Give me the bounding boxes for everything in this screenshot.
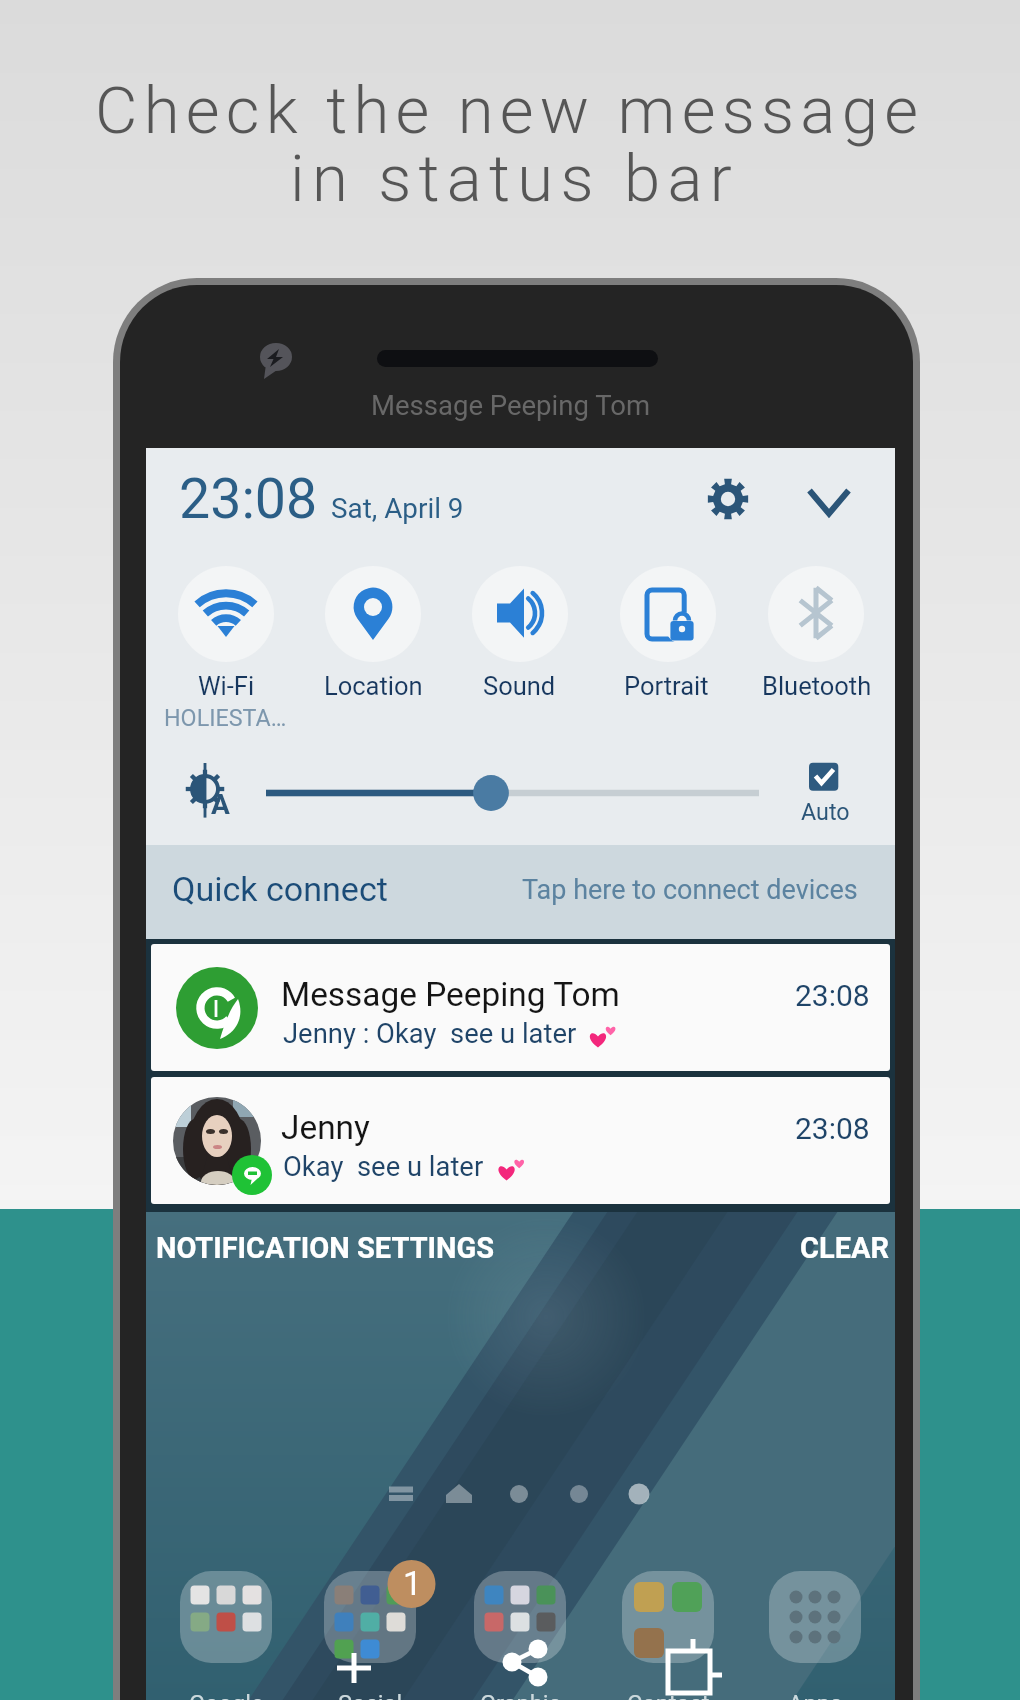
staticText: Apps: [788, 1690, 843, 1700]
staticText: Quick connect: [172, 869, 388, 909]
staticText: Graphic: [480, 1690, 561, 1700]
staticText: 1: [403, 1564, 422, 1603]
staticText: Location: [324, 671, 423, 701]
staticText: Message Peeping Tom: [371, 389, 651, 421]
staticText: Contact: [627, 1690, 710, 1700]
button[interactable]: Jenny: [151, 1077, 890, 1204]
staticText: Portrait: [624, 671, 709, 701]
staticText: Google: [189, 1690, 264, 1700]
button[interactable]: NOTIFICATION SETTINGS: [150, 1220, 510, 1276]
staticText: Tap here to connect devices: [522, 874, 858, 906]
button[interactable]: [299, 560, 447, 710]
button[interactable]: [446, 560, 594, 710]
staticText: Sound: [483, 671, 556, 701]
staticText: Jenny : Okay see u later: [283, 1018, 577, 1050]
staticText: in status bar: [290, 140, 739, 217]
staticText: Okay see u later: [283, 1151, 484, 1183]
staticText: Auto: [801, 798, 850, 825]
staticText: CLEAR: [800, 1231, 890, 1265]
staticText: Sat, April 9: [331, 492, 464, 525]
button[interactable]: [146, 845, 895, 939]
staticText: NOTIFICATION SETTINGS: [156, 1231, 495, 1265]
staticText: Jenny: [281, 1108, 370, 1147]
staticText: Check the new message: [95, 72, 925, 149]
button[interactable]: CLEAR: [790, 1220, 895, 1276]
button[interactable]: Message Peeping Tom: [151, 944, 890, 1071]
button[interactable]: Auto brightness: [795, 750, 855, 838]
staticText: Message Peeping Tom: [281, 975, 620, 1014]
button[interactable]: [152, 560, 300, 710]
button[interactable]: [594, 560, 742, 710]
staticText: 23:08: [795, 1111, 870, 1146]
button[interactable]: Collapse panel: [789, 462, 869, 542]
staticText: A: [211, 788, 230, 821]
staticText: Wi-Fi: [198, 671, 255, 701]
button[interactable]: Settings: [688, 459, 768, 539]
staticText: Social: [338, 1690, 403, 1700]
staticText: 23:08: [179, 467, 318, 532]
staticText: 23:08: [795, 978, 870, 1013]
button[interactable]: [742, 560, 890, 710]
staticText: HOLIESTA…: [164, 704, 287, 731]
staticText: Bluetooth: [762, 671, 872, 701]
